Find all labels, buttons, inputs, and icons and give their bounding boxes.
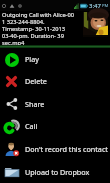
staticText: PM: [102, 3, 109, 9]
other: Play: [5, 53, 19, 67]
staticText: Delete: [25, 76, 47, 86]
staticText: 3:47: [89, 2, 101, 10]
button[interactable]: Play: [0, 48, 110, 70]
staticText: Upload to Dropbox: [25, 167, 90, 177]
staticText: Call: [25, 121, 38, 131]
button[interactable]: Delete: [0, 70, 110, 92]
staticText: Share: [25, 99, 45, 109]
staticText: Outgoing Call with Alice-00 1 323-244-88…: [2, 11, 74, 45]
button[interactable]: Call: [0, 115, 110, 137]
staticText: Play: [25, 54, 39, 64]
button[interactable]: Share: [0, 92, 110, 115]
button[interactable]: Upload to Dropbox: [0, 160, 110, 183]
staticText: Don't record this contact: [25, 144, 108, 154]
button[interactable]: Don't record this contact: [0, 137, 110, 160]
